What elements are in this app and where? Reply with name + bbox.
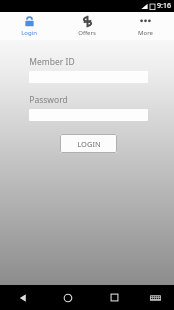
button[interactable]: Recent apps [91,285,137,310]
staticText: Member ID [29,56,75,68]
button[interactable]: Keyboard [137,285,174,310]
staticText: Password [29,94,68,106]
button[interactable]: Back [0,285,45,310]
staticText: 9:16 [157,1,171,11]
button[interactable]: Home [45,285,91,310]
staticText: More [138,29,153,37]
button[interactable]: Login [0,12,58,40]
button[interactable]: Offers [58,12,116,40]
staticText: LOGIN [77,139,101,149]
staticText: Offers [78,29,96,37]
button[interactable]: LOGIN [60,134,117,153]
button[interactable]: More [116,12,174,40]
staticText: Login [21,29,37,37]
